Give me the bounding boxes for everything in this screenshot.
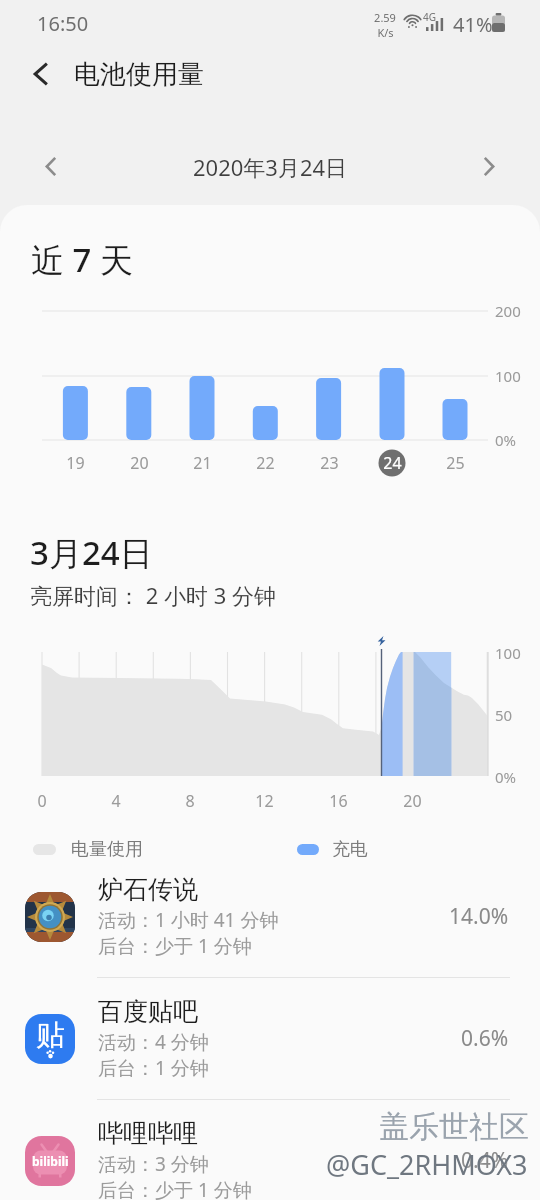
staticText: K/s	[377, 25, 394, 40]
button[interactable]: 贴	[0, 978, 540, 1099]
staticText: 充电	[332, 838, 368, 861]
staticText: 25	[446, 452, 465, 474]
staticText: 后台：少于 1 分钟	[98, 1177, 252, 1200]
staticText: 100	[495, 643, 521, 663]
staticText: 0%	[495, 430, 517, 450]
button[interactable]: Next day	[466, 143, 512, 189]
staticText: 炉石传说	[98, 874, 198, 905]
staticText: 2.59	[374, 10, 396, 25]
button[interactable]: Previous day	[28, 143, 74, 189]
staticText: 41%	[453, 11, 493, 38]
staticText: 电池使用量	[74, 58, 204, 91]
staticText: 100	[495, 366, 521, 386]
staticText: 16	[329, 790, 348, 812]
staticText: 盖乐世社区	[379, 1108, 529, 1146]
button[interactable]: 电量使用	[33, 838, 143, 861]
staticText: 8	[185, 790, 195, 812]
staticText: 亮屏时间： 2 小时 3 分钟	[30, 580, 277, 610]
staticText: 后台：少于 1 分钟	[98, 933, 252, 959]
staticText: 19	[66, 452, 85, 474]
staticText: 24	[383, 452, 402, 474]
staticText: bilibili	[32, 1153, 69, 1169]
staticText: 50	[495, 705, 513, 725]
staticText: 贴	[36, 1017, 65, 1054]
staticText: 哔哩哔哩	[98, 1118, 198, 1149]
staticText: 23	[320, 452, 339, 474]
staticText: @GC_2RHMOX3	[326, 1146, 528, 1183]
staticText: 电量使用	[71, 838, 143, 861]
staticText: 活动：1 小时 41 分钟	[98, 907, 279, 933]
staticText: 12	[255, 790, 274, 812]
staticText: 活动：4 分钟	[98, 1029, 209, 1055]
button[interactable]: Back	[0, 46, 76, 102]
staticText: 3月24日	[30, 530, 153, 575]
staticText: 21	[193, 452, 212, 474]
staticText: 0%	[495, 767, 517, 787]
staticText: 4G	[423, 10, 436, 24]
staticText: 22	[256, 452, 275, 474]
button[interactable]: bilibili	[0, 1100, 540, 1200]
staticText: 0	[37, 790, 47, 812]
button[interactable]: 充电	[297, 838, 368, 861]
staticText: 2020年3月24日	[193, 152, 348, 182]
staticText: 4	[111, 790, 121, 812]
staticText: 200	[495, 301, 521, 321]
staticText: 后台：1 分钟	[98, 1055, 209, 1081]
staticText: 0.4%	[461, 1146, 509, 1175]
button[interactable]: 炉石传说	[0, 856, 540, 977]
staticText: 百度贴吧	[98, 996, 198, 1027]
staticText: 活动：3 分钟	[98, 1151, 209, 1177]
staticText: 20	[403, 790, 422, 812]
staticText: 近 7 天	[31, 237, 134, 282]
staticText: 14.0%	[449, 902, 509, 931]
staticText: 0.6%	[461, 1024, 509, 1053]
staticText: 16:50	[37, 10, 89, 37]
staticText: 20	[130, 452, 149, 474]
